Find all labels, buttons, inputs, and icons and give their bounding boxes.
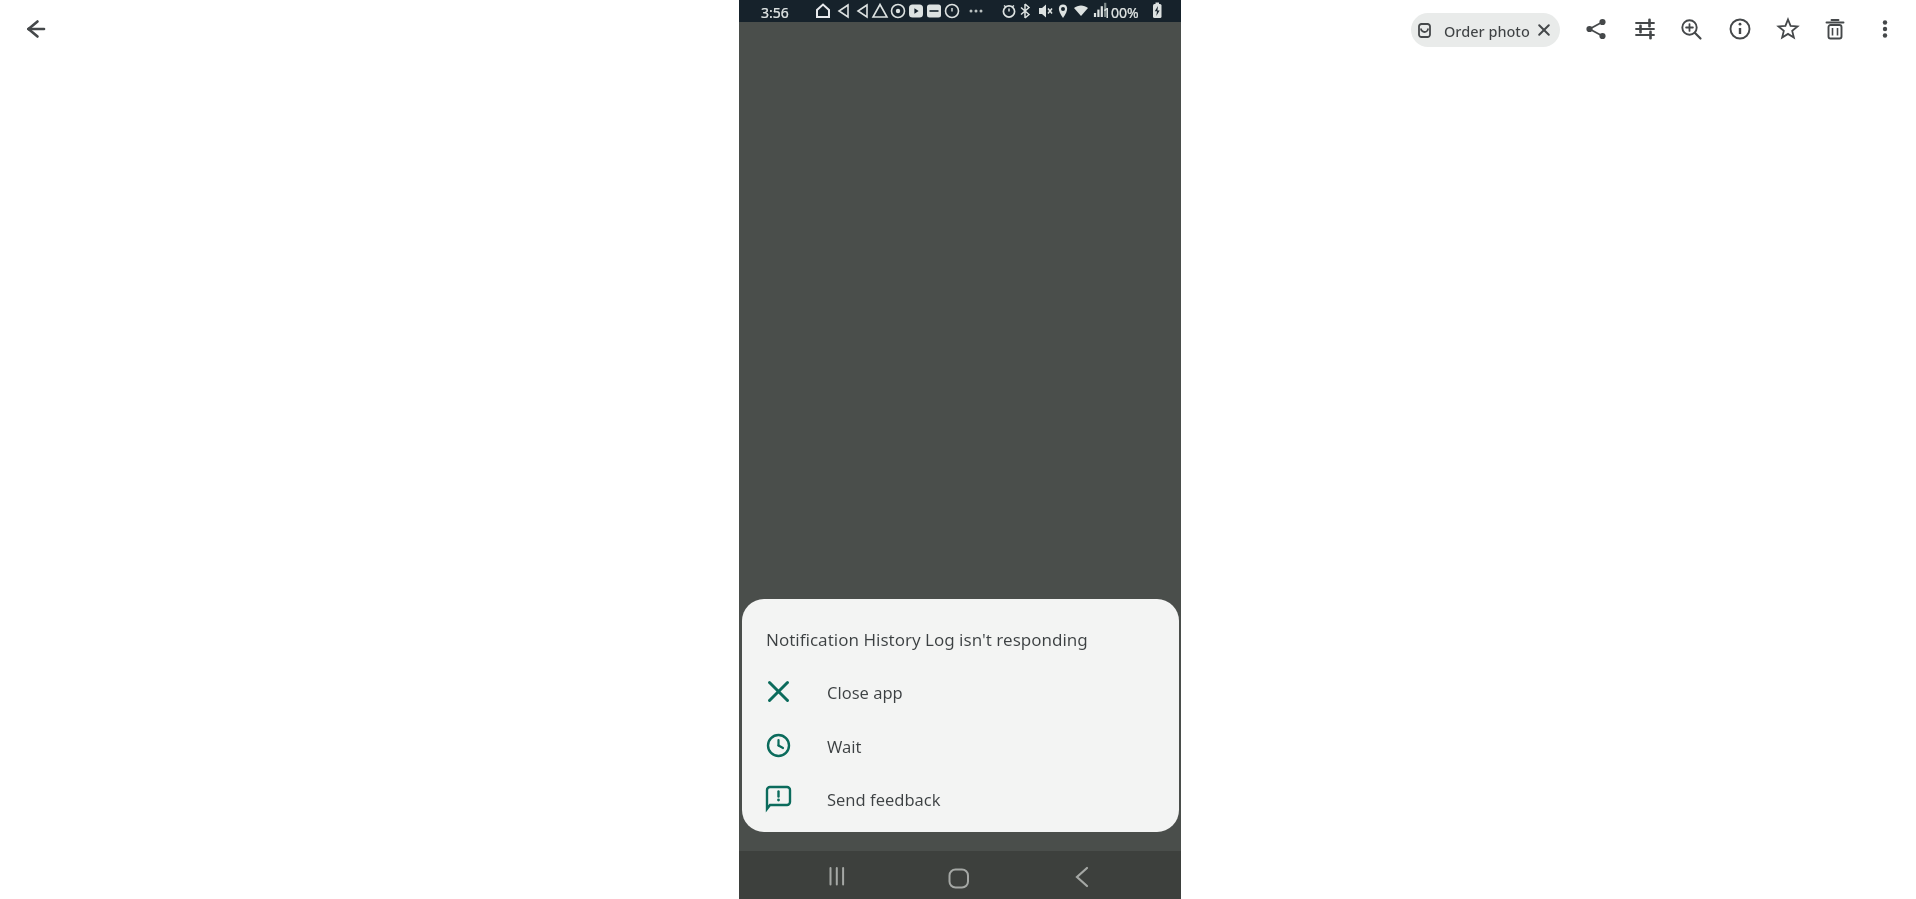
button[interactable] — [1815, 9, 1855, 49]
button[interactable] — [17, 17, 43, 43]
staticText: Close app — [827, 681, 903, 703]
button[interactable]: Wait — [754, 723, 1167, 768]
button[interactable] — [1720, 9, 1760, 49]
staticText: Order photo — [1444, 21, 1530, 41]
button[interactable]: Send feedback — [754, 776, 1167, 821]
button[interactable]: Close app — [754, 669, 1167, 714]
staticText: 3:56 — [761, 3, 789, 22]
button[interactable] — [813, 853, 861, 897]
button[interactable]: Order photo — [1411, 13, 1560, 47]
button[interactable] — [1865, 9, 1905, 49]
staticText: Send feedback — [827, 788, 941, 810]
button[interactable] — [1625, 9, 1665, 49]
staticText: Notification History Log isn't respondin… — [766, 628, 1088, 651]
button[interactable] — [1576, 9, 1616, 49]
button[interactable] — [935, 853, 983, 897]
staticText: 100% — [1103, 3, 1139, 22]
staticText: Wait — [827, 735, 862, 757]
button[interactable] — [1058, 853, 1106, 897]
button[interactable] — [1768, 9, 1808, 49]
button[interactable] — [1671, 9, 1711, 49]
